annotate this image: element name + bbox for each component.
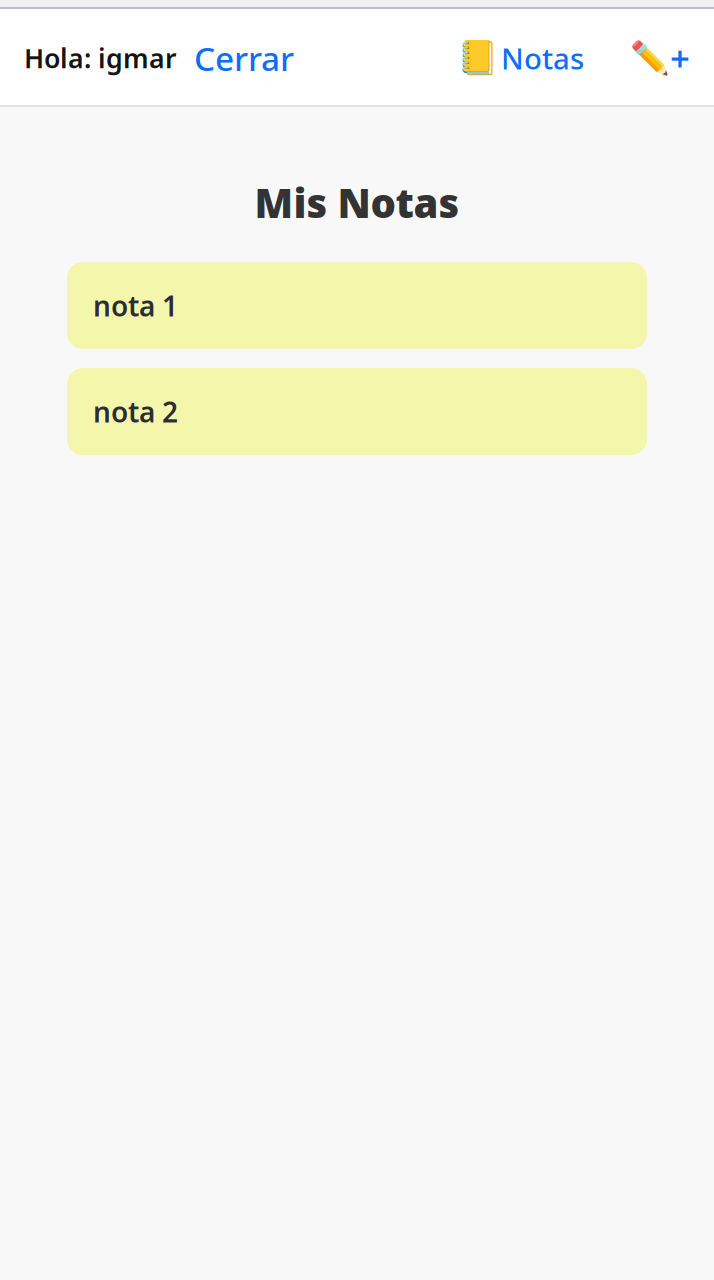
- button[interactable]: nota 1: [67, 262, 647, 349]
- button[interactable]: Notas: [457, 28, 584, 87]
- button[interactable]: Nueva nota: [630, 25, 690, 91]
- button[interactable]: nota 2: [67, 368, 647, 455]
- staticText: nota 2: [93, 393, 178, 430]
- staticText: ✏️: [630, 40, 670, 76]
- staticText: Mis Notas: [254, 176, 459, 229]
- staticText: nota 1: [93, 287, 178, 324]
- staticText: +: [670, 35, 690, 81]
- button[interactable]: Cerrar: [177, 26, 306, 90]
- staticText: Notas: [501, 38, 584, 77]
- staticText: 📒: [457, 39, 499, 77]
- staticText: Cerrar: [194, 36, 294, 80]
- staticText: Hola: igmar: [24, 40, 177, 76]
